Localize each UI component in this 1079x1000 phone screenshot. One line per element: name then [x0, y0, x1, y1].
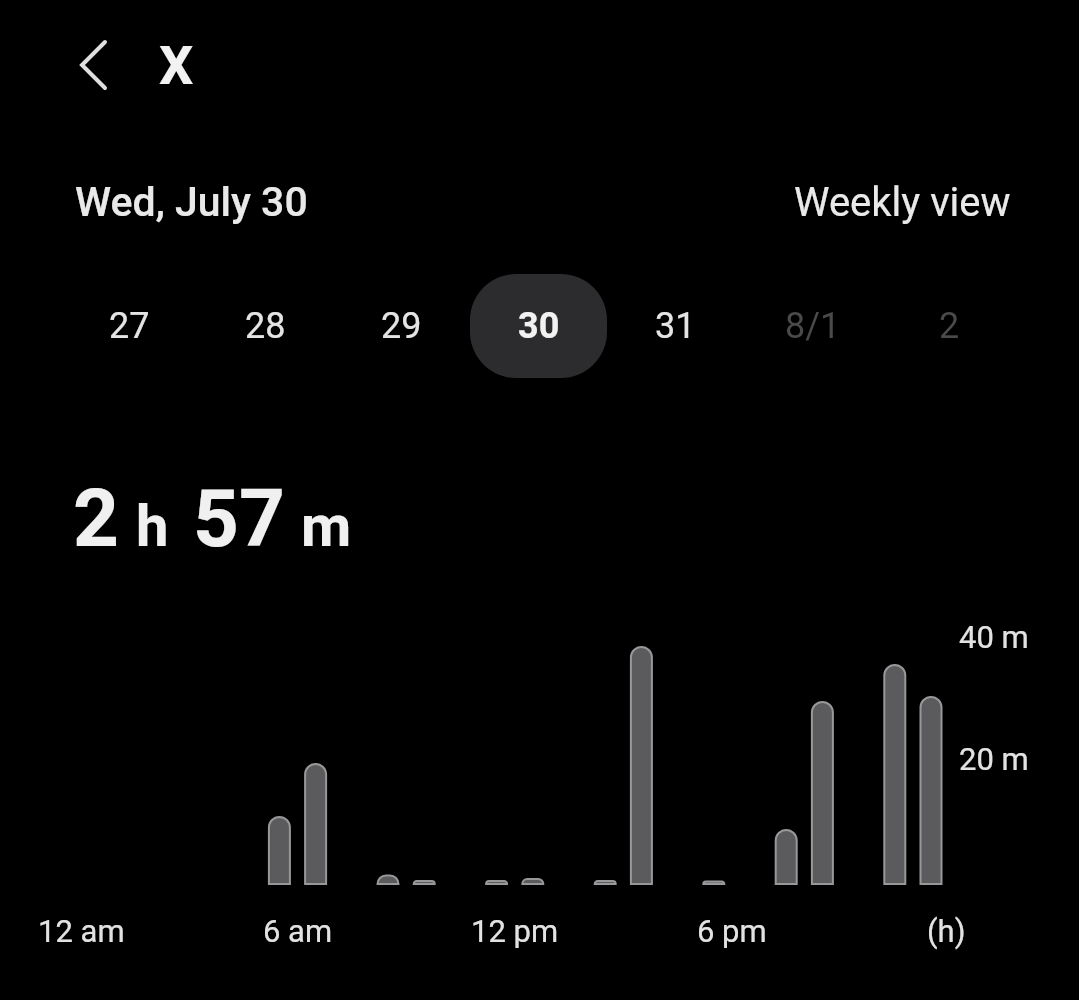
- staticText: h: [136, 492, 169, 560]
- staticText: 12 am: [38, 913, 125, 949]
- button[interactable]: 28: [197, 274, 333, 378]
- button[interactable]: [62, 28, 124, 102]
- staticText: 2: [73, 472, 119, 566]
- staticText: X: [159, 34, 194, 97]
- staticText: 29: [381, 305, 422, 347]
- staticText: 12 pm: [471, 913, 559, 949]
- staticText: Wed, July 30: [75, 178, 308, 226]
- staticText: 2: [939, 305, 960, 347]
- staticText: 8/1: [785, 305, 841, 347]
- staticText: 6 pm: [697, 913, 767, 949]
- button[interactable]: 8/1: [744, 274, 881, 378]
- staticText: 57: [193, 472, 285, 566]
- staticText: 20 m: [959, 741, 1029, 777]
- button[interactable]: 30: [470, 274, 607, 378]
- staticText: 27: [109, 305, 150, 347]
- staticText: m: [301, 492, 352, 560]
- staticText: (h): [927, 913, 966, 949]
- staticText: 30: [518, 305, 560, 347]
- staticText: Weekly view: [794, 179, 1011, 226]
- button[interactable]: 29: [333, 274, 470, 378]
- button[interactable]: 27: [61, 274, 197, 378]
- staticText: 31: [655, 305, 696, 347]
- staticText: 28: [245, 305, 286, 347]
- button[interactable]: 31: [607, 274, 744, 378]
- staticText: 6 am: [263, 913, 333, 949]
- button[interactable]: 2: [881, 274, 1018, 378]
- staticText: 40 m: [959, 619, 1029, 655]
- button[interactable]: Weekly view: [661, 172, 1011, 232]
